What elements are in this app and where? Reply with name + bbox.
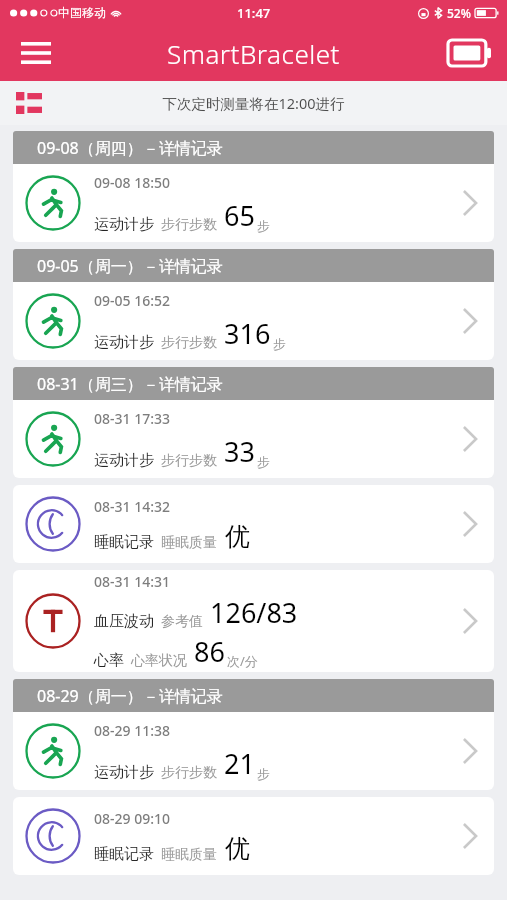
staticText: 中国移动 bbox=[58, 5, 106, 20]
staticText: 126/83 bbox=[210, 594, 298, 631]
staticText: 运动计步 bbox=[94, 215, 154, 234]
staticText: 次/分 bbox=[227, 652, 258, 670]
staticText: 运动计步 bbox=[94, 763, 154, 782]
staticText: 316 bbox=[224, 315, 271, 352]
staticText: 步行步数 bbox=[161, 334, 217, 352]
staticText: 运动计步 bbox=[94, 333, 154, 352]
staticText: 52% bbox=[447, 5, 471, 21]
button[interactable]: 09-08（周四）－详情记录 bbox=[13, 131, 494, 164]
staticText: 11:47 bbox=[237, 4, 271, 22]
button[interactable]: Menu bbox=[14, 31, 58, 75]
staticText: 参考值 bbox=[161, 613, 203, 631]
staticText: 步行步数 bbox=[161, 216, 217, 234]
staticText: 睡眠质量 bbox=[161, 846, 217, 864]
button[interactable]: 09-08 18:50 bbox=[13, 164, 494, 242]
staticText: 优 bbox=[225, 521, 250, 552]
button[interactable]: 09-05 16:52 bbox=[13, 282, 494, 360]
staticText: 步 bbox=[257, 218, 270, 234]
button[interactable]: 08-31（周三）－详情记录 bbox=[13, 367, 494, 400]
staticText: 步 bbox=[273, 336, 286, 352]
staticText: 09-08（周四）－详情记录 bbox=[37, 137, 223, 159]
staticText: 08-29 11:38 bbox=[94, 721, 171, 740]
button[interactable]: 下次定时测量将在12:00进行 bbox=[0, 81, 507, 125]
staticText: 33 bbox=[224, 433, 255, 470]
button[interactable]: 08-29（周一）－详情记录 bbox=[13, 679, 494, 712]
button[interactable]: 09-05（周一）－详情记录 bbox=[13, 249, 494, 282]
staticText: 下次定时测量将在12:00进行 bbox=[162, 93, 345, 113]
button[interactable]: 08-29 11:38 bbox=[13, 712, 494, 790]
staticText: 08-29 09:10 bbox=[94, 809, 171, 828]
staticText: 睡眠质量 bbox=[161, 534, 217, 552]
staticText: 血压波动 bbox=[94, 612, 154, 631]
staticText: 09-05 16:52 bbox=[94, 291, 171, 310]
button[interactable]: Battery bbox=[445, 31, 495, 75]
staticText: 08-31 14:31 bbox=[94, 572, 171, 591]
staticText: 21 bbox=[224, 745, 255, 782]
staticText: 步行步数 bbox=[161, 764, 217, 782]
staticText: 优 bbox=[225, 833, 250, 864]
staticText: 08-31（周三）－详情记录 bbox=[37, 373, 223, 395]
button[interactable]: 08-31 14:31 bbox=[13, 570, 494, 672]
staticText: 09-08 18:50 bbox=[94, 173, 171, 192]
staticText: 08-29（周一）－详情记录 bbox=[37, 685, 223, 707]
staticText: 09-05（周一）－详情记录 bbox=[37, 255, 223, 277]
staticText: 65 bbox=[224, 197, 255, 234]
staticText: 步行步数 bbox=[161, 452, 217, 470]
button[interactable]: 08-31 14:32 bbox=[13, 485, 494, 563]
staticText: 心率状况 bbox=[131, 652, 187, 670]
staticText: 步 bbox=[257, 454, 270, 470]
staticText: SmartBracelet bbox=[167, 36, 340, 71]
button[interactable]: 08-29 09:10 bbox=[13, 797, 494, 875]
staticText: 86 bbox=[194, 633, 225, 670]
staticText: 运动计步 bbox=[94, 451, 154, 470]
staticText: 步 bbox=[257, 766, 270, 782]
button[interactable]: 08-31 17:33 bbox=[13, 400, 494, 478]
staticText: 心率 bbox=[94, 651, 124, 670]
staticText: 睡眠记录 bbox=[94, 845, 154, 864]
staticText: 08-31 14:32 bbox=[94, 497, 171, 516]
staticText: 08-31 17:33 bbox=[94, 409, 171, 428]
staticText: 睡眠记录 bbox=[94, 533, 154, 552]
